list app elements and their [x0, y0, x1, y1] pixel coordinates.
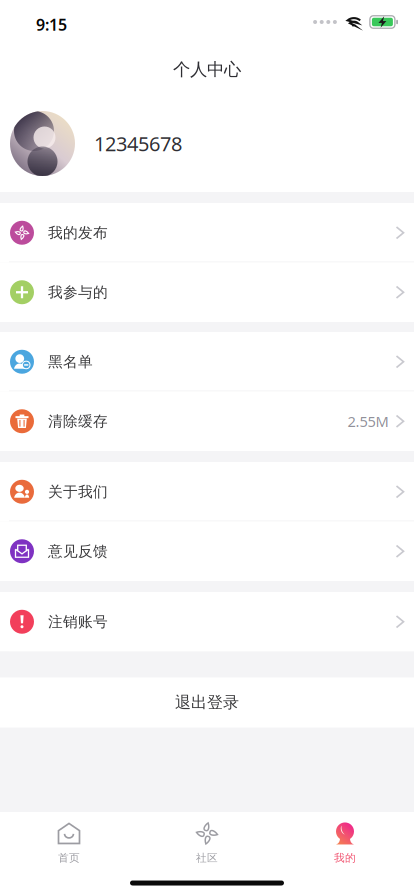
staticText: 我参与的 — [48, 283, 108, 301]
staticText: 退出登录 — [175, 693, 239, 712]
staticText: 注销账号 — [48, 613, 108, 631]
button[interactable]: 注销账号 — [0, 592, 414, 651]
button[interactable]: 关于我们 — [0, 462, 414, 521]
staticText: 意见反馈 — [48, 542, 108, 560]
staticText: 黑名单 — [48, 353, 93, 371]
staticText: 清除缓存 — [48, 412, 108, 430]
button[interactable]: 我的发布 — [0, 203, 414, 262]
button[interactable]: 黑名单 — [0, 332, 414, 391]
staticText: 个人中心 — [173, 59, 241, 80]
button[interactable]: 社区 — [138, 813, 276, 868]
button[interactable]: 我参与的 — [0, 262, 414, 322]
staticText: 9:15 — [36, 14, 67, 35]
staticText: 我的 — [334, 851, 356, 864]
button[interactable]: 清除缓存 — [0, 391, 414, 451]
staticText: 我的发布 — [48, 224, 108, 242]
button[interactable]: 我的 — [276, 813, 414, 868]
staticText: 关于我们 — [48, 483, 108, 501]
staticText: 社区 — [196, 851, 218, 864]
staticText: 12345678 — [94, 130, 182, 157]
staticText: 2.55M — [347, 411, 388, 431]
button[interactable]: 意见反馈 — [0, 521, 414, 581]
button[interactable]: 退出登录 — [0, 677, 414, 727]
staticText: 首页 — [58, 851, 80, 864]
button[interactable]: 首页 — [0, 813, 138, 868]
